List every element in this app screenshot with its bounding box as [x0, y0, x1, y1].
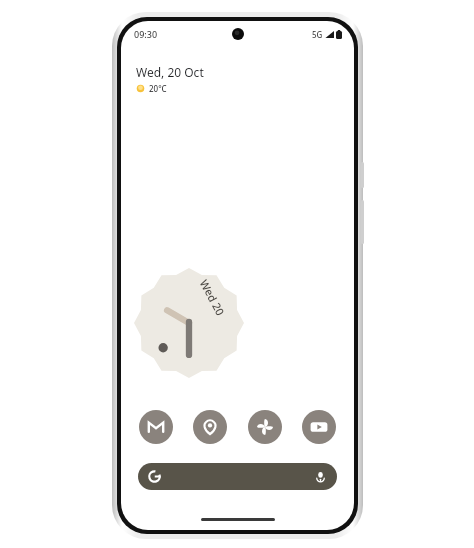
staticText: Wed 20: [197, 277, 228, 318]
button[interactable]: [138, 463, 337, 490]
button[interactable]: Maps: [193, 410, 227, 444]
staticText: 09:30: [134, 28, 158, 40]
staticText: Wed, 20 Oct: [136, 64, 204, 80]
button[interactable]: Clock widget, Wed 20: [134, 268, 244, 378]
staticText: 20°C: [149, 83, 167, 94]
button[interactable]: YouTube: [302, 410, 336, 444]
button[interactable]: Photos: [248, 410, 282, 444]
button[interactable]: Wed, 20 Oct: [134, 62, 206, 96]
button[interactable]: Gmail: [139, 410, 173, 444]
staticText: 5G: [312, 29, 323, 40]
